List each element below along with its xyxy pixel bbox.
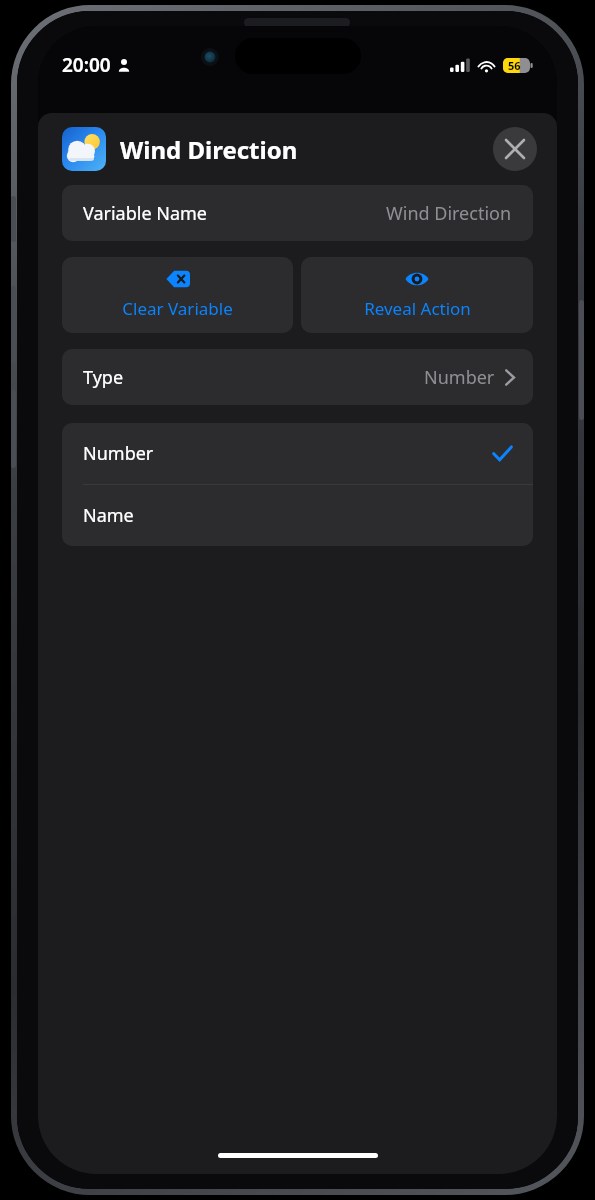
button[interactable]: Type xyxy=(62,349,533,405)
button[interactable]: Clear Variable xyxy=(62,257,293,333)
staticText: 20:00 xyxy=(62,52,111,78)
button[interactable]: Name xyxy=(62,485,533,546)
button[interactable]: Reveal Action xyxy=(301,257,533,333)
staticText: Number xyxy=(83,441,154,466)
staticText: 56 xyxy=(508,58,521,73)
button[interactable]: Number xyxy=(62,423,533,484)
staticText: Type xyxy=(83,365,124,390)
staticText: Variable Name xyxy=(83,201,208,226)
staticText: Clear Variable xyxy=(122,297,233,320)
staticText: Number xyxy=(424,365,495,390)
button[interactable]: Variable Name xyxy=(62,185,533,241)
staticText: Name xyxy=(83,503,134,528)
button[interactable]: Close xyxy=(493,127,537,171)
staticText: Wind Direction xyxy=(120,133,298,166)
staticText: Wind Direction xyxy=(386,201,512,226)
staticText: Reveal Action xyxy=(364,297,471,320)
